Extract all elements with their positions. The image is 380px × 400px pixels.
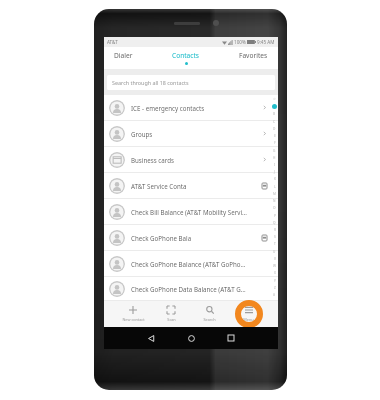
button[interactable]: Back: [143, 330, 159, 346]
button[interactable]: Business cards: [109, 147, 267, 172]
staticText: Check GoPhone Bala: [131, 234, 259, 242]
staticText: I: [274, 163, 276, 167]
staticText: S: [274, 235, 276, 239]
staticText: Z: [274, 286, 276, 290]
button[interactable]: Favorites: [239, 47, 268, 69]
staticText: X: [274, 271, 276, 275]
staticText: E: [274, 134, 276, 138]
staticText: W: [273, 264, 276, 268]
staticText: Y: [274, 279, 276, 283]
staticText: Contacts: [172, 51, 200, 60]
button[interactable]: Search through all 18 contacts: [112, 75, 270, 90]
staticText: ICE - emergency contacts: [131, 104, 259, 112]
staticText: C: [273, 120, 276, 124]
button[interactable]: New contact: [114, 301, 152, 327]
staticText: M: [273, 192, 276, 196]
button[interactable]: Recents: [223, 330, 239, 346]
button[interactable]: Menu: [229, 301, 268, 327]
staticText: Scan: [167, 317, 176, 322]
staticText: 100%: [234, 39, 246, 45]
button[interactable]: Check Bill Balance (AT&T Mobility Servi…: [109, 199, 267, 224]
staticText: O: [273, 206, 276, 210]
staticText: Search: [203, 317, 216, 322]
staticText: Search through all 18 contacts: [112, 79, 189, 86]
staticText: D: [273, 127, 276, 131]
staticText: L: [274, 185, 276, 189]
staticText: Dialer: [114, 51, 133, 60]
staticText: 9:45 AM: [257, 39, 275, 45]
staticText: AT&T: [107, 39, 118, 45]
button[interactable]: Dialer: [114, 47, 133, 69]
staticText: ☆: [273, 97, 276, 101]
staticText: Groups: [131, 130, 259, 138]
staticText: #: [273, 293, 276, 297]
staticText: P: [274, 214, 276, 218]
button[interactable]: AT&T Service Conta: [109, 173, 267, 198]
button[interactable]: Scan: [152, 301, 190, 327]
staticText: AT&T Service Conta: [131, 182, 259, 190]
staticText: B: [273, 112, 276, 116]
button[interactable]: Search: [190, 301, 229, 327]
button[interactable]: Home: [183, 330, 199, 346]
staticText: G: [273, 149, 276, 153]
staticText: N: [273, 199, 276, 203]
staticText: K: [274, 177, 276, 181]
button[interactable]: Check GoPhone Data Balance (AT&T G…: [109, 277, 267, 300]
staticText: F: [274, 141, 276, 145]
staticText: Menu: [243, 317, 254, 322]
staticText: R: [274, 228, 276, 232]
button[interactable]: Groups: [109, 121, 267, 146]
staticText: New contact: [122, 317, 145, 322]
button[interactable]: Check GoPhone Balance (AT&T GoPho…: [109, 251, 267, 276]
button[interactable]: Contacts: [172, 47, 200, 69]
staticText: Check GoPhone Data Balance (AT&T G…: [131, 285, 259, 293]
button[interactable]: ICE - emergency contacts: [109, 95, 267, 120]
staticText: Q: [273, 221, 276, 225]
staticText: U: [273, 250, 276, 254]
staticText: J: [274, 170, 275, 174]
staticText: T: [274, 242, 276, 246]
staticText: Business cards: [131, 156, 259, 164]
staticText: V: [274, 257, 276, 261]
staticText: Check GoPhone Balance (AT&T GoPho…: [131, 260, 259, 268]
staticText: Check Bill Balance (AT&T Mobility Servi…: [131, 208, 259, 216]
staticText: Favorites: [239, 51, 268, 60]
button[interactable]: Check GoPhone Bala: [109, 225, 267, 250]
staticText: H: [273, 156, 276, 160]
